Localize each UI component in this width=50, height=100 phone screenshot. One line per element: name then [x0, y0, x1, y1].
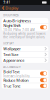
- button[interactable]: Night Shift: [2, 24, 48, 31]
- button[interactable]: True Tone: [2, 83, 48, 89]
- staticText: Increases legibility: [3, 74, 29, 78]
- button[interactable]: Wallpaper: [2, 46, 48, 51]
- staticText: Display: [5, 5, 18, 11]
- button[interactable]: Display: [0, 4, 20, 12]
- button[interactable]: Reduce Motion: [2, 77, 48, 83]
- staticText: Reducing white point lowers the intensit…: [3, 32, 45, 39]
- staticText: Night Shift: [3, 23, 20, 28]
- button[interactable]: Auto-Brightness: [2, 18, 48, 23]
- staticText: ACCESSIBILITY: [3, 65, 21, 69]
- staticText: Text Size: [3, 52, 18, 57]
- staticText: Appearance: [3, 58, 24, 63]
- staticText: Bold Text: [3, 69, 19, 74]
- staticText: Auto-Brightness: [3, 18, 31, 23]
- button[interactable]: Bold Text: [2, 70, 48, 77]
- button[interactable]: Text Size: [2, 52, 48, 57]
- staticText: 9:41: [3, 1, 10, 4]
- staticText: 10:00 PM to 7:00 AM: [3, 28, 34, 32]
- staticText: True Tone: [3, 83, 20, 88]
- staticText: Reduce Motion: [3, 77, 28, 83]
- button[interactable]: Appearance: [2, 57, 48, 63]
- staticText: BRIGHTNESS: [3, 13, 18, 17]
- staticText: DISPLAY: [3, 41, 14, 45]
- staticText: Wallpaper: [3, 46, 21, 51]
